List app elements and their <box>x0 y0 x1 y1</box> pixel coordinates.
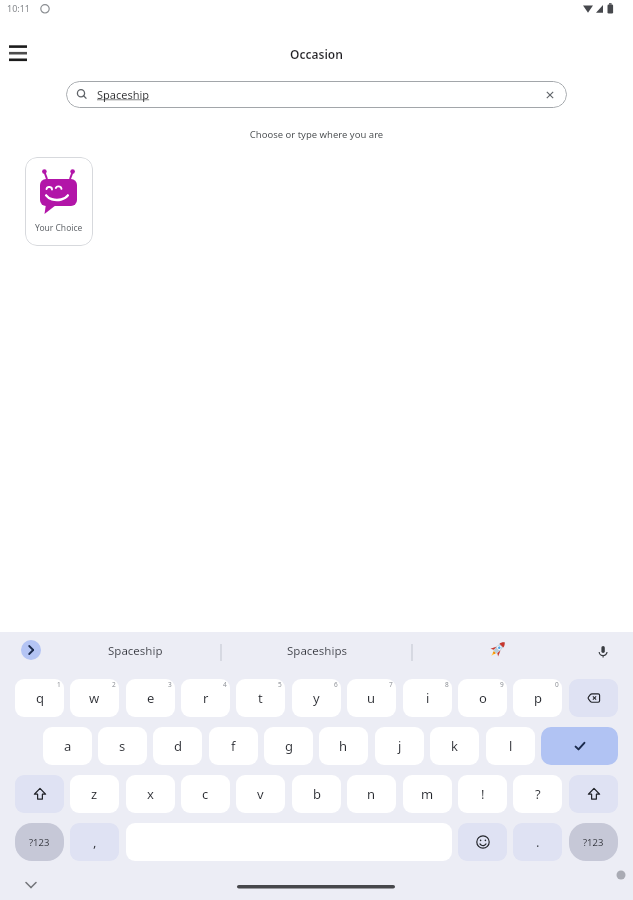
staticText: 0 <box>555 680 559 689</box>
button[interactable]: f <box>209 727 258 765</box>
button[interactable]: , <box>70 823 119 861</box>
staticText: Spaceship <box>97 87 150 102</box>
staticText: m <box>421 785 434 803</box>
button[interactable]: s <box>98 727 147 765</box>
staticText: l <box>509 737 513 755</box>
staticText: Spaceship <box>108 643 163 659</box>
staticText: Occasion <box>290 46 343 62</box>
staticText: , <box>93 833 97 851</box>
staticText: 10:11 <box>7 2 31 14</box>
button[interactable]: d <box>153 727 202 765</box>
button[interactable]: l <box>486 727 535 765</box>
staticText: 5 <box>278 680 282 689</box>
button[interactable]: Spaceships <box>227 632 407 669</box>
button[interactable]: u <box>347 679 396 717</box>
staticText: 9 <box>500 680 504 689</box>
button[interactable]: Spaceship <box>66 81 567 108</box>
staticText: a <box>64 737 72 755</box>
staticText: Your Choice <box>35 222 83 234</box>
staticText: ! <box>481 785 485 803</box>
button[interactable] <box>17 871 45 899</box>
button[interactable] <box>237 878 395 896</box>
staticText: e <box>147 689 155 707</box>
staticText: 1 <box>57 680 61 689</box>
button[interactable]: p <box>513 679 562 717</box>
staticText: 6 <box>334 680 338 689</box>
staticText: 8 <box>445 680 449 689</box>
staticText: 7 <box>389 680 393 689</box>
staticText: f <box>231 737 236 755</box>
staticText: d <box>174 737 182 755</box>
staticText: b <box>313 785 321 803</box>
button[interactable] <box>569 775 618 813</box>
staticText: k <box>451 737 458 755</box>
staticText: i <box>426 689 430 707</box>
staticText: 2 <box>112 680 116 689</box>
button[interactable]: o <box>458 679 507 717</box>
staticText: o <box>479 689 487 707</box>
button[interactable] <box>4 40 32 68</box>
button[interactable]: b <box>292 775 341 813</box>
button[interactable]: w <box>70 679 119 717</box>
staticText: x <box>147 785 154 803</box>
staticText: g <box>285 737 293 755</box>
staticText: ? <box>535 785 541 803</box>
button[interactable] <box>588 637 618 667</box>
staticText: n <box>367 785 376 803</box>
staticText: p <box>534 689 542 707</box>
button[interactable] <box>569 679 618 717</box>
button[interactable]: t <box>236 679 285 717</box>
button[interactable]: r <box>181 679 230 717</box>
button[interactable]: i <box>403 679 452 717</box>
staticText: r <box>203 689 209 707</box>
button[interactable]: . <box>513 823 562 861</box>
button[interactable] <box>21 640 41 660</box>
button[interactable]: x <box>126 775 175 813</box>
staticText: q <box>36 689 44 707</box>
button[interactable]: h <box>319 727 368 765</box>
staticText: Choose or type where you are <box>0 128 633 141</box>
button[interactable]: z <box>70 775 119 813</box>
button[interactable]: ?123 <box>15 823 64 861</box>
staticText: 4 <box>223 680 227 689</box>
button[interactable]: y <box>292 679 341 717</box>
button[interactable] <box>536 81 564 108</box>
button[interactable] <box>458 823 507 861</box>
button[interactable]: e <box>126 679 175 717</box>
staticText: w <box>89 689 100 707</box>
button[interactable]: ?123 <box>569 823 618 861</box>
staticText: 3 <box>168 680 172 689</box>
button[interactable]: ! <box>458 775 507 813</box>
button[interactable]: v <box>236 775 285 813</box>
staticText: z <box>91 785 98 803</box>
staticText: s <box>119 737 126 755</box>
staticText: ?123 <box>583 836 604 849</box>
button[interactable] <box>541 727 618 765</box>
button[interactable]: Spaceship <box>50 632 220 669</box>
staticText: j <box>398 737 402 755</box>
staticText: h <box>339 737 348 755</box>
staticText: ?123 <box>29 836 50 849</box>
button[interactable]: g <box>264 727 313 765</box>
button[interactable]: a <box>43 727 92 765</box>
button[interactable]: j <box>375 727 424 765</box>
button[interactable]: n <box>347 775 396 813</box>
button[interactable]: Your Choice <box>25 157 93 246</box>
button[interactable] <box>460 632 535 665</box>
staticText: t <box>258 689 263 707</box>
button[interactable]: ? <box>513 775 562 813</box>
button[interactable]: c <box>181 775 230 813</box>
button[interactable]: q <box>15 679 64 717</box>
button[interactable]: m <box>403 775 452 813</box>
button[interactable]: k <box>430 727 479 765</box>
staticText: u <box>367 689 376 707</box>
staticText: c <box>202 785 209 803</box>
button[interactable] <box>15 775 64 813</box>
staticText: . <box>536 833 540 851</box>
staticText: y <box>313 689 320 707</box>
staticText: v <box>257 785 264 803</box>
staticText: Spaceships <box>287 643 348 659</box>
